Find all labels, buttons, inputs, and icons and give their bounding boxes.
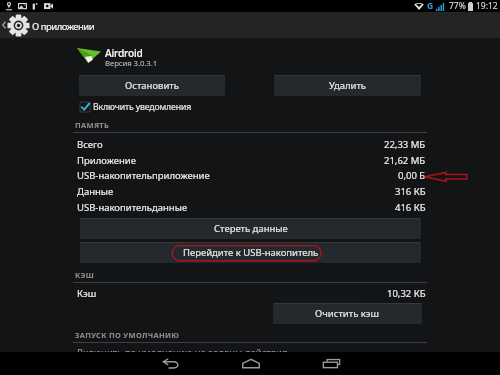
staticText: Приложение bbox=[77, 154, 136, 167]
staticText: 21,62 МБ bbox=[384, 154, 426, 167]
staticText: Перейдите к USB-накопитель bbox=[183, 246, 319, 259]
staticText: Удалить bbox=[329, 79, 367, 92]
staticText: 22,33 МБ bbox=[384, 138, 426, 151]
button[interactable]: Back bbox=[0, 12, 98, 38]
button[interactable]: Остановить bbox=[79, 75, 225, 96]
staticText: USB-накопительданные bbox=[77, 201, 188, 214]
staticText: 416 КБ bbox=[395, 201, 426, 214]
button[interactable]: Включить уведомления bbox=[80, 101, 192, 113]
staticText: Очистить кэш bbox=[315, 307, 380, 320]
staticText: Airdroid bbox=[105, 46, 143, 60]
staticText: G bbox=[427, 0, 434, 12]
staticText: 0,00 Б bbox=[398, 169, 426, 182]
staticText: Кэш bbox=[77, 287, 97, 300]
button[interactable]: Перейдите к USB-накопитель bbox=[80, 242, 421, 263]
button[interactable]: Recents bbox=[308, 352, 354, 375]
button[interactable]: Стереть данные bbox=[80, 218, 421, 239]
staticText: 10,32 КБ bbox=[387, 287, 426, 300]
button[interactable]: Приложение bbox=[73, 153, 427, 168]
staticText: 77% bbox=[449, 0, 466, 12]
staticText: Включить по умолчанию не заданы действия bbox=[77, 346, 288, 352]
button[interactable]: Удалить bbox=[274, 75, 421, 96]
staticText: 19:12 bbox=[476, 0, 498, 12]
staticText: Версия 3.0.3.1 bbox=[105, 58, 158, 69]
button[interactable]: Back bbox=[147, 352, 193, 375]
button[interactable]: Кэш bbox=[73, 286, 427, 301]
staticText: Всего bbox=[77, 138, 103, 151]
staticText: ПАМЯТЬ bbox=[75, 120, 110, 130]
staticText: О приложении bbox=[32, 20, 95, 33]
button[interactable]: USB-накопительданные bbox=[73, 200, 427, 215]
button[interactable]: Всего bbox=[73, 137, 427, 152]
button[interactable]: USB-накопительприложение bbox=[73, 168, 427, 183]
staticText: КЭШ bbox=[75, 270, 95, 280]
button[interactable]: Home bbox=[228, 352, 274, 375]
staticText: Включить уведомления bbox=[93, 101, 192, 113]
staticText: ЗАПУСК ПО УМОЛЧАНИЮ bbox=[75, 330, 180, 340]
button[interactable]: Данные bbox=[73, 184, 427, 199]
staticText: Остановить bbox=[125, 79, 179, 92]
staticText: Данные bbox=[77, 185, 114, 198]
staticText: 316 КБ bbox=[395, 185, 426, 198]
staticText: Стереть данные bbox=[214, 222, 288, 235]
staticText: USB-накопительприложение bbox=[77, 169, 210, 182]
button[interactable]: Очистить кэш bbox=[273, 303, 422, 324]
